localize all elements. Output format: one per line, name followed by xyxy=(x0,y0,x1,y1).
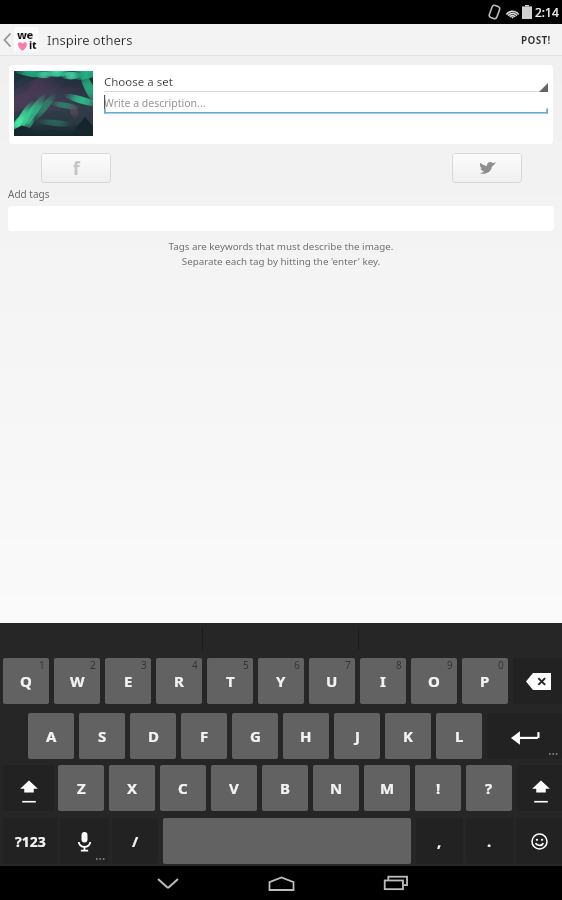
staticText: J xyxy=(355,726,360,746)
button[interactable]: I xyxy=(360,658,406,704)
staticText: I xyxy=(380,671,386,691)
button[interactable]: W xyxy=(54,658,100,704)
button[interactable]: ?123 xyxy=(3,818,57,864)
staticText: N xyxy=(330,778,343,798)
staticText: H xyxy=(300,726,312,746)
button[interactable]: H xyxy=(283,713,329,759)
button[interactable]: Q xyxy=(3,658,49,704)
staticText: Tags are keywords that must describe the… xyxy=(0,240,562,253)
staticText: . xyxy=(487,831,492,851)
staticText: 6 xyxy=(294,658,300,672)
button[interactable]: Y xyxy=(258,658,304,704)
button[interactable]: Backspace xyxy=(513,658,562,704)
button[interactable]: P xyxy=(462,658,508,704)
staticText: V xyxy=(229,778,239,798)
staticText: T xyxy=(226,671,235,691)
staticText: Q xyxy=(20,671,32,691)
staticText: P xyxy=(480,671,490,691)
staticText: D xyxy=(148,726,159,746)
button[interactable]: U xyxy=(309,658,355,704)
staticText: Write a description... xyxy=(104,96,206,110)
button[interactable]: Hide keyboard xyxy=(140,866,195,900)
staticText: C xyxy=(178,778,188,798)
button[interactable]: M xyxy=(364,765,410,811)
button[interactable]: Share on Twitter xyxy=(452,153,522,183)
button[interactable]: X xyxy=(109,765,155,811)
staticText: Separate each tag by hitting the 'enter'… xyxy=(0,255,562,268)
staticText: L xyxy=(455,726,464,746)
button[interactable]: POST! xyxy=(509,24,562,55)
button[interactable]: ? xyxy=(466,765,512,811)
button[interactable]: Z xyxy=(58,765,104,811)
staticText: 0 xyxy=(498,658,504,672)
staticText: 4 xyxy=(192,658,198,672)
button[interactable]: / xyxy=(112,818,158,864)
button[interactable]: . xyxy=(466,818,513,864)
button[interactable]: Share on Facebook xyxy=(41,153,111,183)
staticText: 2:14 xyxy=(535,4,559,20)
staticText: G xyxy=(250,726,261,746)
button[interactable]: Home xyxy=(254,866,309,900)
staticText: A xyxy=(46,726,57,746)
staticText: U xyxy=(326,671,338,691)
button[interactable]: Shift xyxy=(3,765,54,811)
staticText: 2 xyxy=(90,658,96,672)
staticText: Y xyxy=(276,671,286,691)
button[interactable]: O xyxy=(411,658,457,704)
staticText: it xyxy=(29,38,37,52)
staticText: POST! xyxy=(521,33,551,47)
staticText: S xyxy=(98,726,107,746)
button[interactable]: J xyxy=(334,713,380,759)
button[interactable]: F xyxy=(181,713,227,759)
button[interactable]: S xyxy=(79,713,125,759)
button[interactable]: D xyxy=(130,713,176,759)
staticText: O xyxy=(428,671,440,691)
staticText: ?123 xyxy=(15,832,46,851)
button[interactable]: A xyxy=(28,713,74,759)
staticText: F xyxy=(200,726,209,746)
staticText: 5 xyxy=(243,658,249,672)
staticText: we xyxy=(17,27,34,42)
button[interactable]: Shift xyxy=(517,765,562,811)
button[interactable]: T xyxy=(207,658,253,704)
button[interactable]: Back xyxy=(0,24,14,55)
button[interactable]: Emoji xyxy=(516,818,562,864)
button[interactable]: , xyxy=(416,818,463,864)
button[interactable]: Recents xyxy=(368,866,423,900)
staticText: K xyxy=(403,726,413,746)
button[interactable]: V xyxy=(211,765,257,811)
staticText: M xyxy=(380,778,395,798)
button[interactable]: L xyxy=(436,713,482,759)
button[interactable]: ! xyxy=(415,765,461,811)
button[interactable]: Enter xyxy=(487,713,562,759)
staticText: ? xyxy=(485,778,493,798)
staticText: B xyxy=(280,778,290,798)
button[interactable]: Voice input xyxy=(60,818,109,864)
staticText: W xyxy=(70,671,85,691)
staticText: , xyxy=(437,831,442,851)
staticText: 1 xyxy=(39,658,45,672)
button[interactable]: G xyxy=(232,713,278,759)
staticText: Add tags xyxy=(8,187,50,201)
staticText: Choose a set xyxy=(104,74,173,90)
button[interactable]: R xyxy=(156,658,202,704)
staticText: R xyxy=(174,671,184,691)
staticText: / xyxy=(132,831,139,851)
staticText: E xyxy=(124,671,133,691)
staticText: 8 xyxy=(396,658,402,672)
button[interactable]: B xyxy=(262,765,308,811)
staticText: X xyxy=(127,778,138,798)
staticText: 9 xyxy=(447,658,453,672)
staticText: Inspire others xyxy=(47,31,133,49)
button[interactable]: K xyxy=(385,713,431,759)
button[interactable]: N xyxy=(313,765,359,811)
staticText: f xyxy=(73,157,80,180)
button[interactable]: C xyxy=(160,765,206,811)
staticText: Z xyxy=(77,778,86,798)
staticText: ! xyxy=(436,778,441,798)
staticText: 3 xyxy=(141,658,147,672)
button[interactable]: E xyxy=(105,658,151,704)
staticText: 7 xyxy=(345,658,351,672)
